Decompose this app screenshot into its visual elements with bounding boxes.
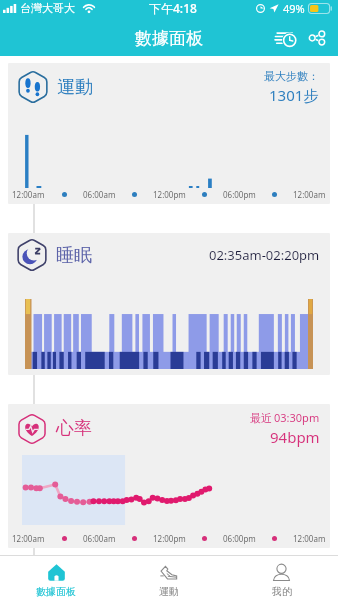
staticText: 06:00am	[83, 533, 116, 544]
staticText: 02:35am-02:20pm	[209, 246, 320, 264]
staticText: 睡眠	[56, 244, 92, 267]
staticText: 94bpm	[270, 427, 320, 447]
button[interactable]: 睡眠	[8, 233, 330, 375]
staticText: 運動	[57, 76, 93, 99]
staticText: 數據面板	[135, 28, 203, 49]
staticText: 12:00pm	[153, 533, 186, 544]
button[interactable]: 我的	[225, 557, 338, 600]
button[interactable]: 心率	[8, 404, 330, 548]
staticText: 最近	[250, 411, 272, 425]
staticText: 06:00pm	[223, 533, 256, 544]
button[interactable]: 運動	[112, 557, 225, 600]
staticText: 49%	[283, 1, 305, 16]
staticText: 12:00am	[293, 533, 326, 544]
staticText: 03:30pm	[274, 410, 320, 425]
staticText: 06:00am	[83, 189, 116, 200]
staticText: 12:00am	[12, 533, 45, 544]
button[interactable]: History	[270, 23, 300, 53]
staticText: 12:00am	[12, 189, 45, 200]
staticText: 我的	[272, 585, 292, 598]
staticText: 1301步	[269, 85, 319, 105]
staticText: 數據面板	[36, 585, 76, 598]
button[interactable]: 數據面板	[0, 557, 112, 600]
staticText: 06:00pm	[223, 189, 256, 200]
button[interactable]: Share	[302, 23, 332, 53]
staticText: 台灣大哥大	[20, 1, 75, 15]
button[interactable]: 運動	[8, 63, 330, 204]
staticText: 最大步數：	[264, 69, 319, 83]
staticText: 心率	[56, 417, 92, 440]
staticText: 運動	[159, 585, 179, 598]
staticText: 12:00am	[293, 189, 326, 200]
staticText: 下午4:18	[149, 0, 197, 16]
staticText: 12:00pm	[153, 189, 186, 200]
